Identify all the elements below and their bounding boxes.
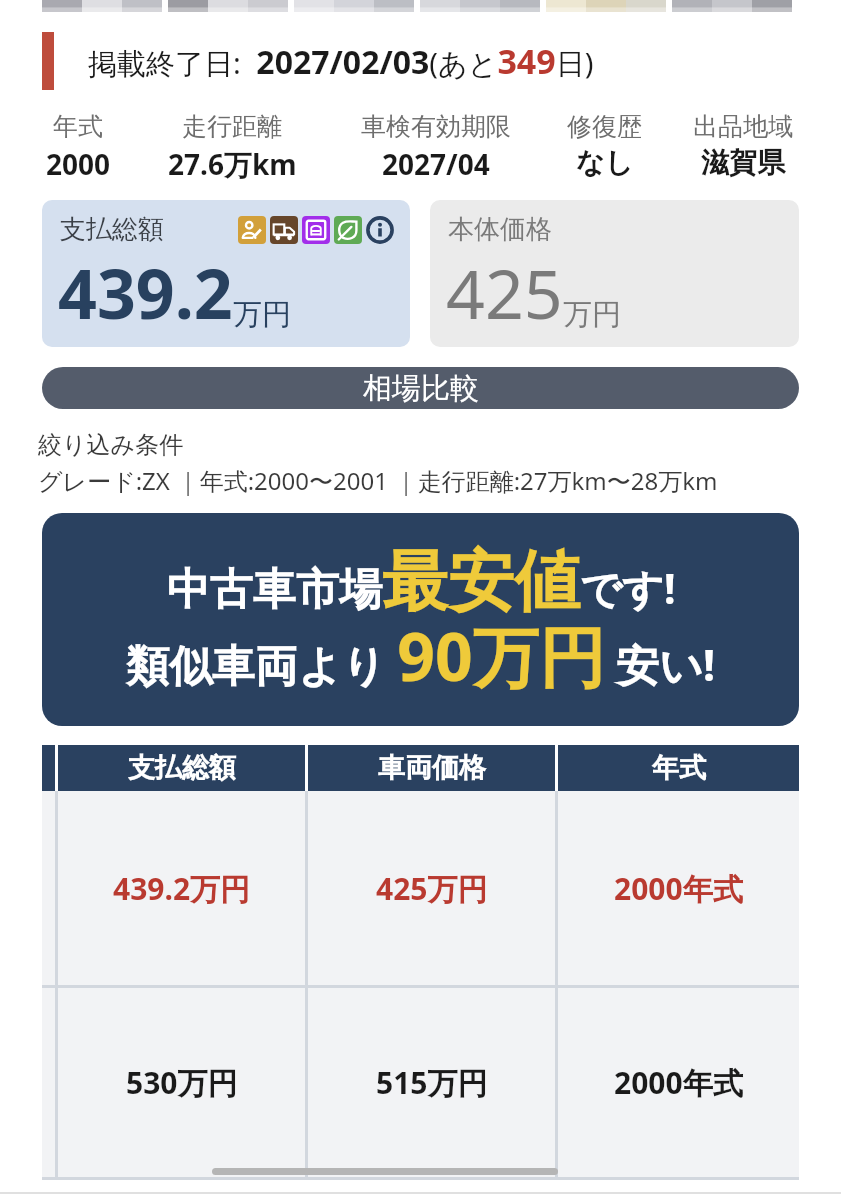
staticText: 絞り込み条件	[38, 430, 184, 460]
staticText: 年式	[652, 751, 706, 785]
staticText: 2000	[46, 145, 111, 183]
staticText: 2000年式	[614, 1062, 743, 1103]
staticText: 相場比較	[363, 370, 479, 407]
staticText: 車検有効期限	[361, 111, 511, 142]
button[interactable]	[420, 0, 540, 12]
staticText: グレード:ZX ｜年式:2000〜2001 ｜走行距離:27万km〜28万km	[38, 464, 718, 497]
button[interactable]: 年式	[558, 745, 799, 791]
staticText: 支払総額	[60, 213, 164, 246]
staticText: 27.6万km	[168, 145, 297, 183]
staticText: 万円	[233, 296, 291, 333]
button[interactable]: 車両価格	[308, 745, 555, 791]
staticText: 類似車両より 90万円 安い!	[126, 610, 716, 700]
button[interactable]: 2000年式	[558, 988, 799, 1177]
button[interactable]	[168, 0, 288, 12]
staticText: 掲載終了日: 2027/02/03(あと349日)	[88, 38, 594, 84]
staticText: 425	[446, 246, 563, 339]
staticText: 2000年式	[614, 868, 743, 909]
button[interactable]: Seller edit	[238, 216, 266, 244]
staticText: 439.2	[58, 246, 233, 339]
button[interactable]: Eco	[334, 216, 362, 244]
staticText: 出品地域	[693, 111, 793, 142]
button[interactable]: 515万円	[308, 988, 555, 1177]
button[interactable]: 530万円	[58, 988, 305, 1177]
button[interactable]: 本体価格	[430, 200, 799, 347]
staticText: 425万円	[376, 868, 488, 909]
button[interactable]: 支払総額	[42, 200, 410, 347]
staticText: 走行距離	[182, 111, 282, 142]
button[interactable]	[546, 0, 666, 12]
staticText: 中古車市場最安値です!	[167, 540, 676, 623]
staticText: 本体価格	[448, 213, 552, 246]
staticText: 439.2万円	[113, 868, 251, 909]
staticText: 530万円	[126, 1062, 238, 1103]
button[interactable]	[672, 0, 792, 12]
staticText: 滋賀県	[701, 145, 785, 180]
button[interactable]: 439.2万円	[58, 791, 305, 985]
staticText: 万円	[563, 296, 621, 333]
button[interactable]: 支払総額	[58, 745, 305, 791]
staticText: なし	[576, 145, 634, 180]
staticText: 修復歴	[567, 111, 642, 142]
button[interactable]: 2000年式	[558, 791, 799, 985]
button[interactable]: 相場比較	[42, 367, 799, 409]
button[interactable]: 425万円	[308, 791, 555, 985]
button[interactable]	[42, 0, 162, 12]
staticText: 支払総額	[128, 751, 236, 785]
button[interactable]: Information	[366, 216, 394, 244]
button[interactable]: Delivery	[270, 216, 298, 244]
staticText: 年式	[53, 111, 103, 142]
button[interactable]: Inspection	[302, 216, 330, 244]
staticText: 車両価格	[378, 751, 486, 785]
staticText: 515万円	[376, 1062, 488, 1103]
button[interactable]	[294, 0, 414, 12]
staticText: 2027/04	[382, 145, 490, 183]
